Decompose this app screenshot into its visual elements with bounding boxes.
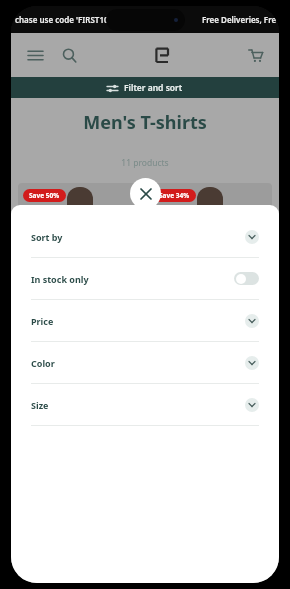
staticText: Save 34% <box>159 191 190 200</box>
button[interactable]: In stock only <box>11 258 279 299</box>
button[interactable]: Cart <box>241 41 269 69</box>
button[interactable]: Price <box>11 300 279 341</box>
button[interactable]: Color <box>11 342 279 383</box>
button[interactable]: Sort by <box>11 216 279 257</box>
staticText: Free Deliveries, Fre <box>202 14 277 25</box>
staticText: Price <box>31 315 54 327</box>
button[interactable]: Menu <box>21 41 49 69</box>
button[interactable]: Home <box>145 38 179 72</box>
staticText: Save 50% <box>29 191 60 200</box>
button[interactable]: Size <box>11 384 279 425</box>
staticText: Filter and sort <box>124 82 183 94</box>
staticText: In stock only <box>31 273 89 285</box>
button[interactable]: Search <box>55 41 83 69</box>
staticText: Size <box>31 399 49 411</box>
staticText: 11 products <box>11 157 279 169</box>
staticText: chase use code 'FIRST10' <box>15 14 111 25</box>
button[interactable]: Filter and sort <box>11 77 279 98</box>
button[interactable]: Save 50% <box>18 183 141 303</box>
button[interactable]: Save 34% <box>148 183 272 303</box>
staticText: Men's T-shirts <box>11 110 279 135</box>
staticText: Color <box>31 357 55 369</box>
staticText: Sort by <box>31 231 63 243</box>
button[interactable]: Close <box>130 178 161 209</box>
